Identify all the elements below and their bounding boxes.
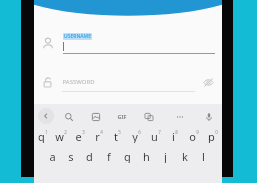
button[interactable]: t <box>108 129 127 143</box>
staticText: 7 <box>158 129 161 135</box>
staticText: p <box>208 129 215 143</box>
staticText: 2 <box>64 129 67 135</box>
other: User <box>41 36 55 50</box>
staticText: t <box>114 129 118 143</box>
staticText: USERNAME <box>64 33 91 40</box>
button[interactable]: k <box>175 149 194 163</box>
button[interactable]: Search <box>61 109 76 124</box>
button[interactable]: r <box>89 129 108 143</box>
button[interactable]: g <box>118 149 137 163</box>
staticText: i <box>172 129 175 143</box>
button[interactable]: Stickers <box>88 109 103 124</box>
staticText: g <box>124 149 131 163</box>
staticText: l <box>202 149 205 163</box>
staticText: s <box>68 149 74 163</box>
staticText: 6 <box>138 129 141 135</box>
button[interactable]: Voice input <box>201 109 216 124</box>
button[interactable]: j <box>156 149 175 163</box>
button[interactable]: Back <box>38 108 54 124</box>
staticText: h <box>143 149 150 163</box>
button[interactable]: p <box>203 129 222 143</box>
staticText: 9 <box>196 129 199 135</box>
button[interactable]: h <box>137 149 156 163</box>
button[interactable]: f <box>99 149 118 163</box>
staticText: k <box>182 149 188 163</box>
staticText: y <box>132 129 138 143</box>
staticText: 4 <box>100 129 103 135</box>
staticText: o <box>189 129 196 143</box>
staticText: 8 <box>175 129 178 135</box>
staticText: j <box>164 149 167 163</box>
staticText: q <box>38 129 45 143</box>
staticText: 3 <box>82 129 85 135</box>
button[interactable]: Show password <box>201 75 215 89</box>
button[interactable]: w <box>52 129 70 143</box>
staticText: w <box>55 129 64 143</box>
staticText: a <box>49 149 56 163</box>
staticText: d <box>86 149 93 163</box>
button[interactable]: GIF <box>115 109 129 123</box>
button[interactable]: u <box>146 129 165 143</box>
button[interactable]: q <box>34 129 52 143</box>
button[interactable]: Password lock <box>41 69 215 95</box>
button[interactable]: o <box>184 129 203 143</box>
button[interactable]: i <box>165 129 184 143</box>
staticText: f <box>107 149 111 163</box>
button[interactable]: s <box>61 149 80 163</box>
staticText: 0 <box>215 129 218 135</box>
staticText: GIF <box>117 113 127 120</box>
button[interactable]: e <box>70 129 89 143</box>
staticText: 5 <box>118 129 121 135</box>
button[interactable]: d <box>80 149 99 163</box>
button[interactable]: a <box>43 149 61 163</box>
button[interactable]: More options <box>172 109 187 124</box>
staticText: u <box>151 129 158 143</box>
staticText: PASSWORD <box>62 78 95 86</box>
other: Password lock <box>41 76 54 89</box>
button[interactable]: y <box>127 129 146 143</box>
staticText: e <box>75 129 82 143</box>
button[interactable]: Translate <box>141 109 156 124</box>
staticText: 1 <box>45 129 48 135</box>
button[interactable]: l <box>194 149 213 163</box>
staticText: r <box>95 129 100 143</box>
button[interactable]: User <box>41 28 215 58</box>
